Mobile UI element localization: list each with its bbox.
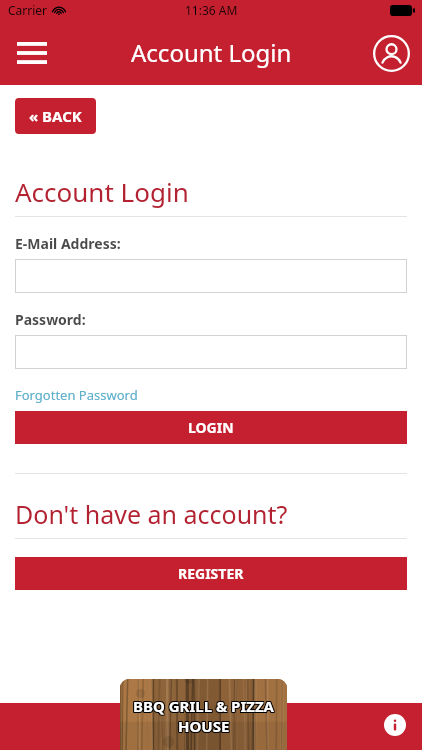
staticText: HOUSE [179,717,231,737]
staticText: Carrier [8,2,48,18]
staticText: 11:36 AM [185,2,238,18]
button[interactable]: Menu [8,29,56,77]
staticText: HOUSE [179,716,231,736]
staticText: « BACK [29,106,82,126]
staticText: BBQ GRILL & PIZZA [132,697,273,717]
button[interactable]: BBQ GRILL & PIZZA [120,679,287,750]
staticText: E-Mail Address: [15,234,121,253]
staticText: HOUSE [178,716,230,736]
staticText: Forgotten Password [15,386,138,404]
staticText: BBQ GRILL & PIZZA [133,697,274,717]
staticText: Password: [15,310,86,329]
staticText: LOGIN [188,418,234,437]
button[interactable]: Forgotten Password [15,386,138,404]
staticText: BBQ GRILL & PIZZA [132,696,273,716]
staticText: BBQ GRILL & PIZZA [134,695,275,715]
button[interactable]: LOGIN [15,411,407,444]
staticText: HOUSE [177,716,229,736]
staticText: Don't have an account? [15,497,288,531]
staticText: Account Login [15,174,189,209]
button[interactable] [15,335,407,369]
staticText: HOUSE [178,715,230,735]
button[interactable]: Info [378,708,412,742]
staticText: BBQ GRILL & PIZZA [133,695,274,715]
staticText: BBQ GRILL & PIZZA [134,697,275,717]
staticText: HOUSE [177,717,229,737]
staticText: REGISTER [178,564,244,583]
staticText: BBQ GRILL & PIZZA [132,695,273,715]
button[interactable]: « BACK [15,98,96,134]
button[interactable] [15,259,407,293]
staticText: Account Login [131,36,292,69]
staticText: HOUSE [179,715,231,735]
staticText: HOUSE [177,715,229,735]
staticText: BBQ GRILL & PIZZA [133,696,274,716]
staticText: HOUSE [178,717,230,737]
button[interactable]: REGISTER [15,557,407,590]
staticText: BBQ GRILL & PIZZA [134,696,275,716]
button[interactable]: Account [367,29,415,77]
